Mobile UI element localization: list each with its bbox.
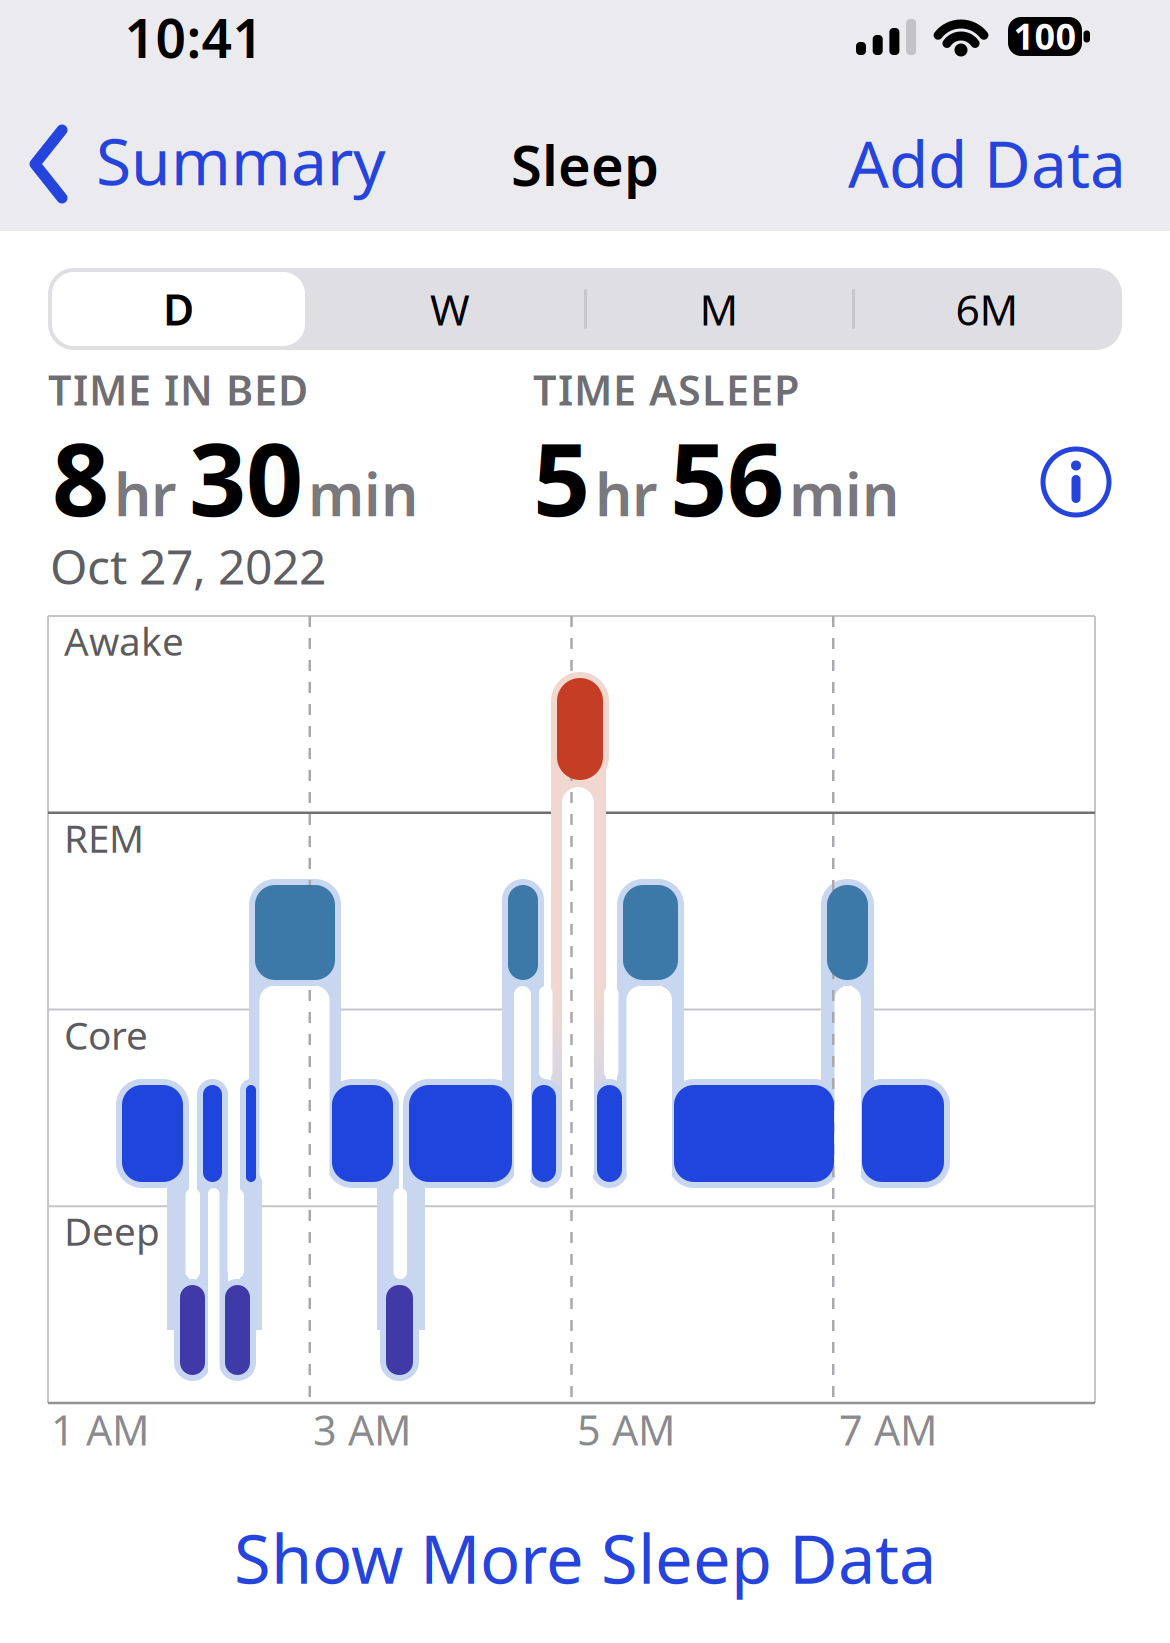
button[interactable]: Show More Sleep Data	[0, 1503, 1170, 1613]
staticText: TIME IN BED	[48, 362, 308, 417]
staticText: hr	[595, 454, 657, 532]
staticText: Summary	[96, 118, 386, 203]
button[interactable]: 6M	[853, 272, 1121, 346]
staticText: 10:41	[124, 2, 263, 73]
staticText: min	[308, 454, 418, 532]
button[interactable]: About Sleep Data	[1040, 446, 1112, 518]
staticText: Core	[64, 1009, 148, 1060]
button[interactable]: D	[52, 272, 305, 346]
staticText: W	[430, 281, 470, 337]
button[interactable]: Back to Summary	[26, 122, 396, 208]
button[interactable]: M	[585, 272, 853, 346]
staticText: Oct 27, 2022	[50, 534, 326, 598]
staticText: 30	[189, 411, 303, 544]
staticText: min	[789, 454, 899, 532]
staticText: Deep	[64, 1205, 160, 1256]
staticText: 3 AM	[313, 1402, 411, 1457]
staticText: REM	[64, 812, 144, 863]
staticText: 1 AM	[51, 1402, 149, 1457]
staticText: 8	[52, 411, 109, 544]
staticText: 56	[670, 411, 784, 544]
button[interactable]: Add Data	[826, 123, 1126, 203]
staticText: Show More Sleep Data	[234, 1514, 936, 1602]
staticText: 5	[533, 411, 590, 544]
staticText: 7 AM	[839, 1402, 937, 1457]
staticText: Awake	[64, 615, 184, 666]
staticText: Sleep	[511, 127, 659, 201]
staticText: hr	[114, 454, 176, 532]
staticText: 5 AM	[577, 1402, 675, 1457]
staticText: D	[163, 281, 194, 337]
button[interactable]: W	[316, 272, 584, 346]
staticText: 100	[1013, 12, 1076, 60]
staticText: TIME ASLEEP	[533, 362, 799, 417]
staticText: Add Data	[848, 120, 1126, 205]
staticText: 6M	[955, 281, 1018, 337]
staticText: M	[699, 281, 738, 337]
